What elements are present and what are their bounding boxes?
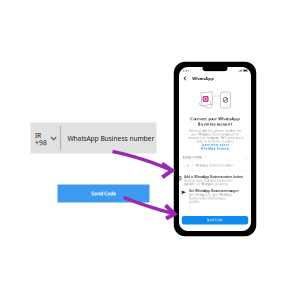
staticText: Send Code xyxy=(91,190,116,197)
staticText: WhatsApp Business number xyxy=(67,134,154,143)
button[interactable]: Send Code xyxy=(56,183,151,204)
staticText: Connect your WhatsApp Business account xyxy=(190,116,240,127)
staticText: Show people that your business is availa… xyxy=(184,179,232,186)
staticText: IR xyxy=(182,164,183,166)
staticText: Send Code xyxy=(207,218,223,222)
staticText: Get messages to your WhatsApp Business d… xyxy=(189,193,232,204)
staticText: IR xyxy=(35,131,41,140)
staticText: Select or add the phone number for your … xyxy=(187,129,242,143)
button[interactable]: Send Code xyxy=(182,216,248,224)
staticText: Add a WhatsApp Business action button xyxy=(184,175,243,179)
staticText: WhatsApp Business number xyxy=(195,164,233,167)
staticText: Get WhatsApp Business messages xyxy=(189,189,238,193)
staticText: +98 xyxy=(182,165,185,167)
staticText: +98 xyxy=(35,138,47,147)
staticText: Learn more about WhatsApp Business. xyxy=(200,143,229,150)
staticText: ADDED PHONE xyxy=(182,156,201,159)
staticText: 9:41 xyxy=(182,69,189,72)
button[interactable]: Back xyxy=(181,74,189,82)
staticText: WhatsApp xyxy=(192,76,214,81)
